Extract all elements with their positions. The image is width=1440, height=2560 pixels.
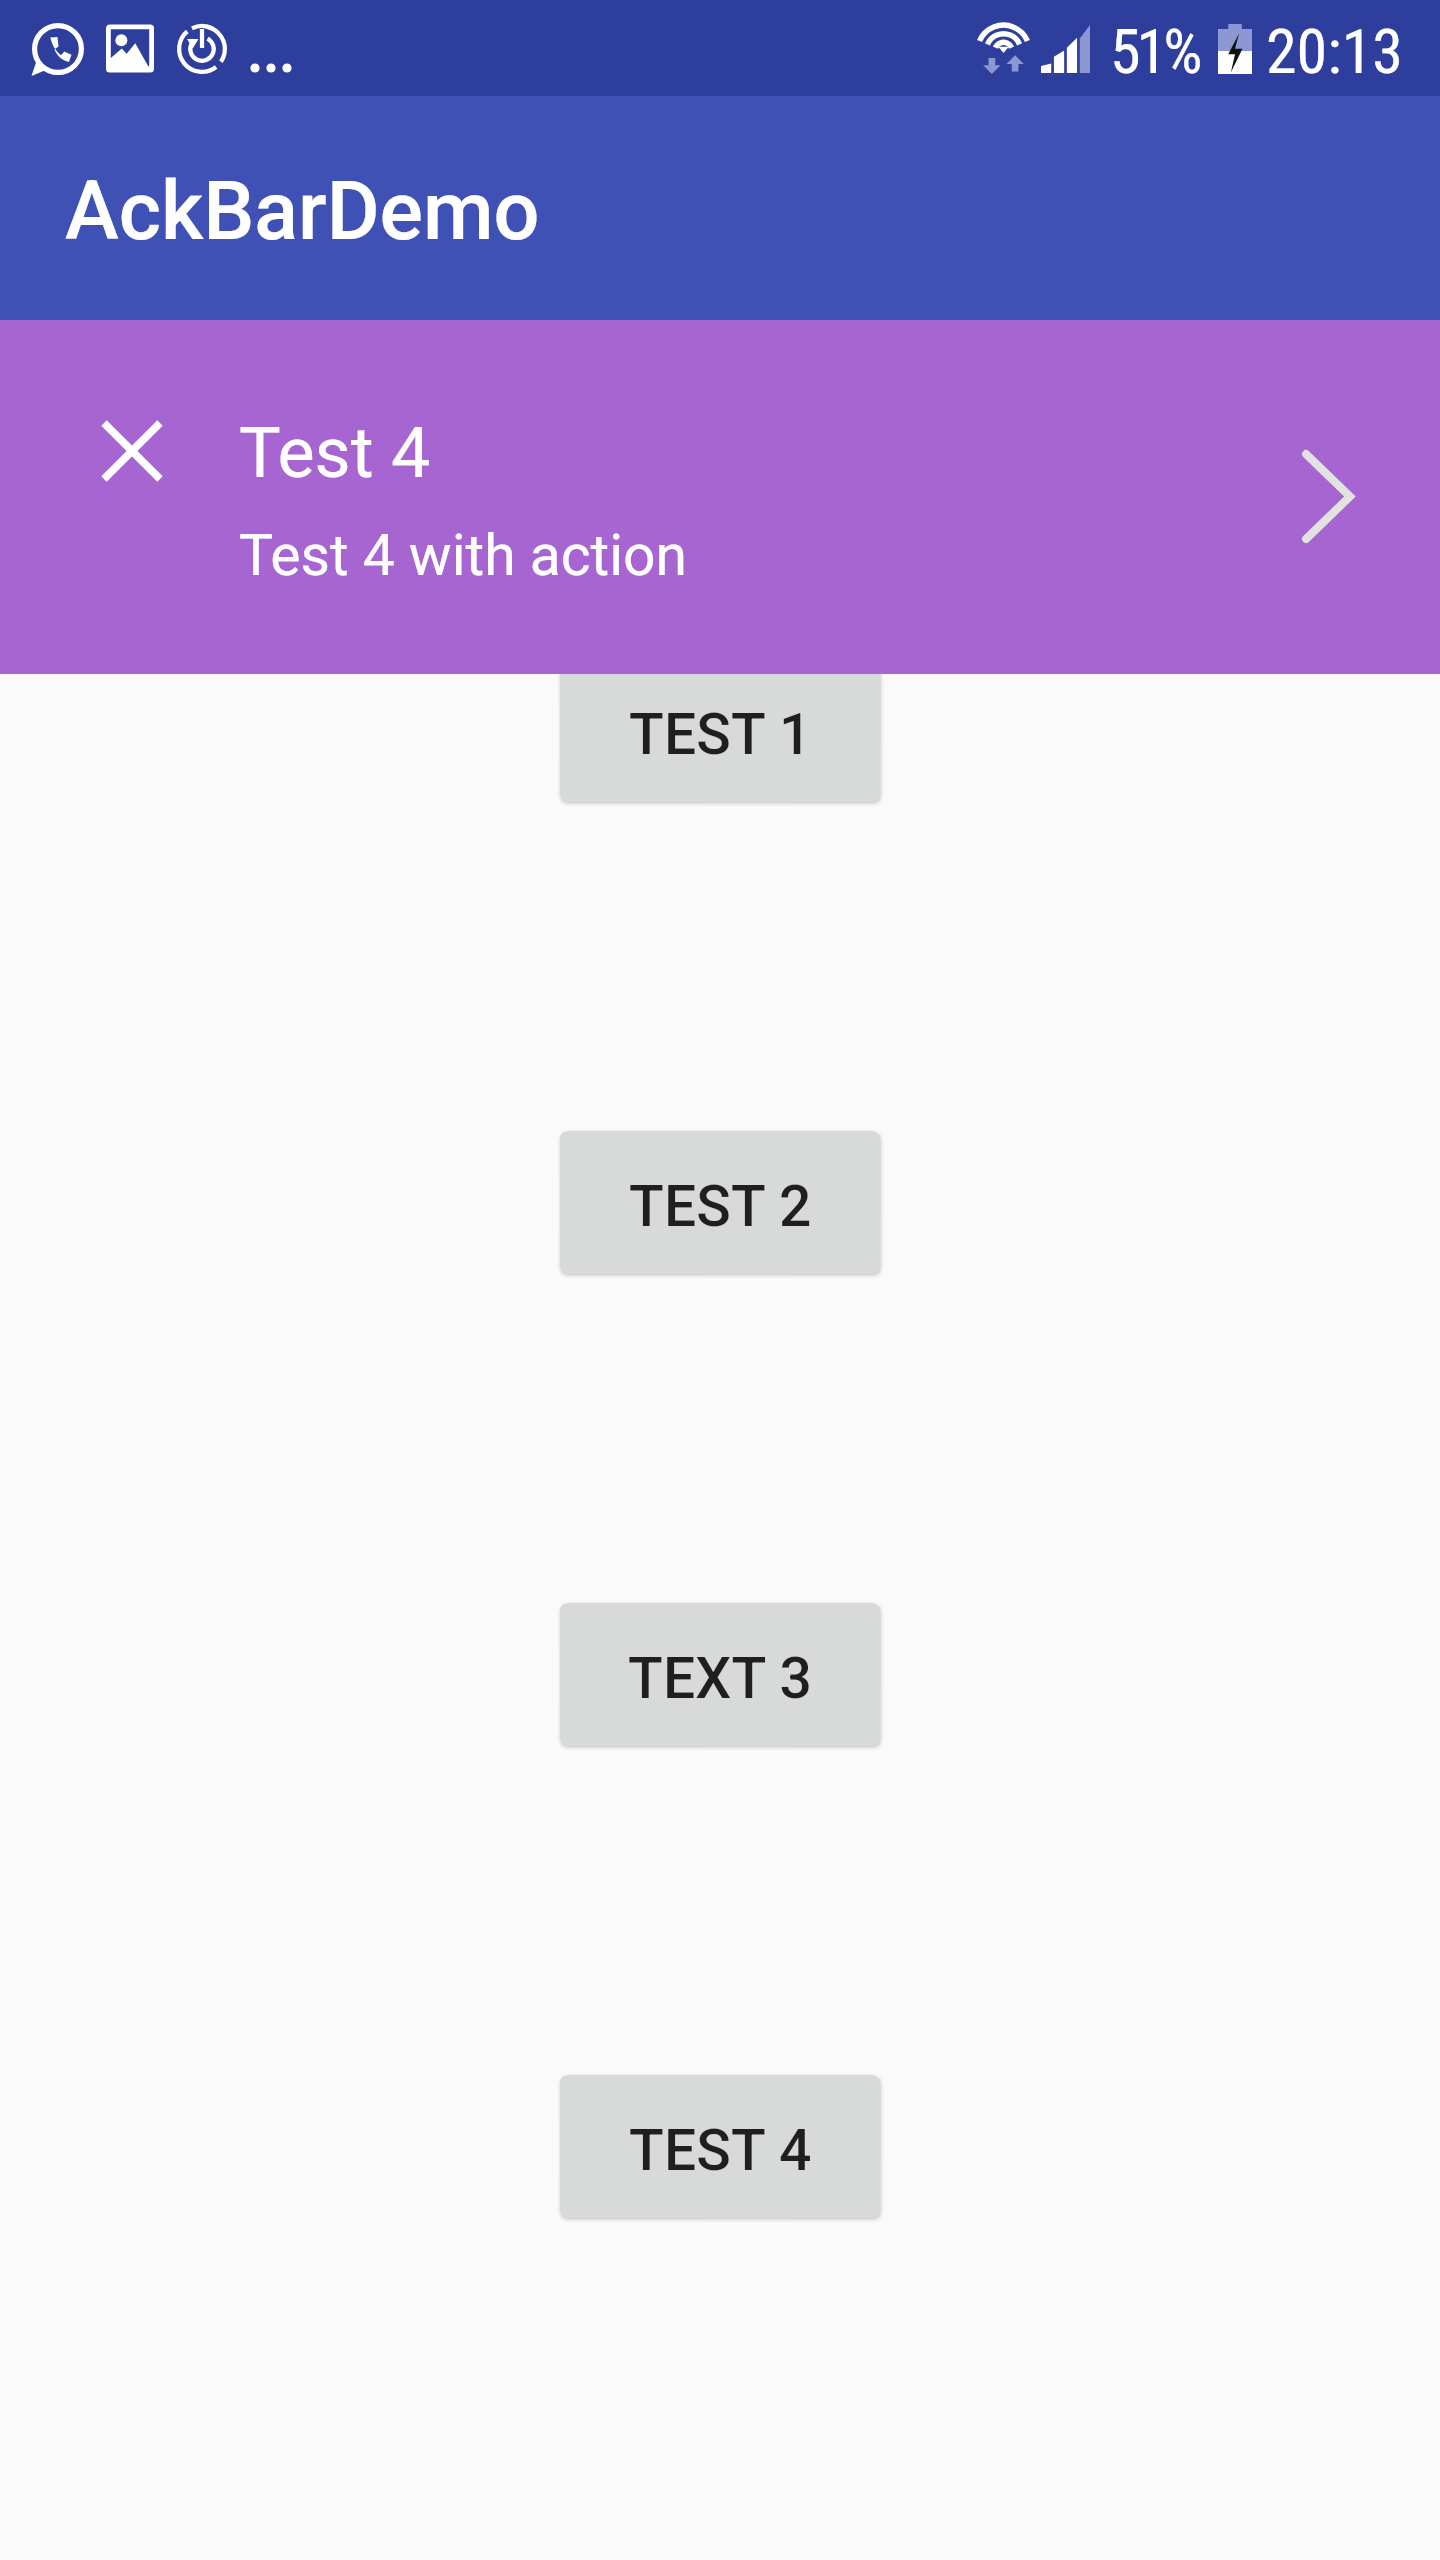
button[interactable]: TEST 2 (560, 1131, 880, 1274)
staticText: TEXT 3 (628, 1645, 813, 1712)
button[interactable]: Dismiss (0, 320, 1440, 674)
button[interactable]: TEXT 3 (560, 1603, 880, 1746)
staticText: 51% (1110, 15, 1199, 88)
staticText: 20:13 (1266, 15, 1403, 88)
button[interactable]: TEST 1 (560, 659, 880, 802)
staticText: TEST 1 (629, 701, 812, 768)
button[interactable]: TEST 4 (560, 2075, 880, 2218)
button[interactable]: Dismiss (86, 405, 178, 497)
staticText: TEST 2 (629, 1173, 812, 1240)
button[interactable]: Action (1258, 426, 1398, 566)
staticText: TEST 4 (629, 2117, 812, 2184)
staticText: Test 4 (239, 412, 431, 494)
staticText: AckBarDemo (65, 164, 540, 259)
staticText: Test 4 with action (239, 522, 688, 589)
